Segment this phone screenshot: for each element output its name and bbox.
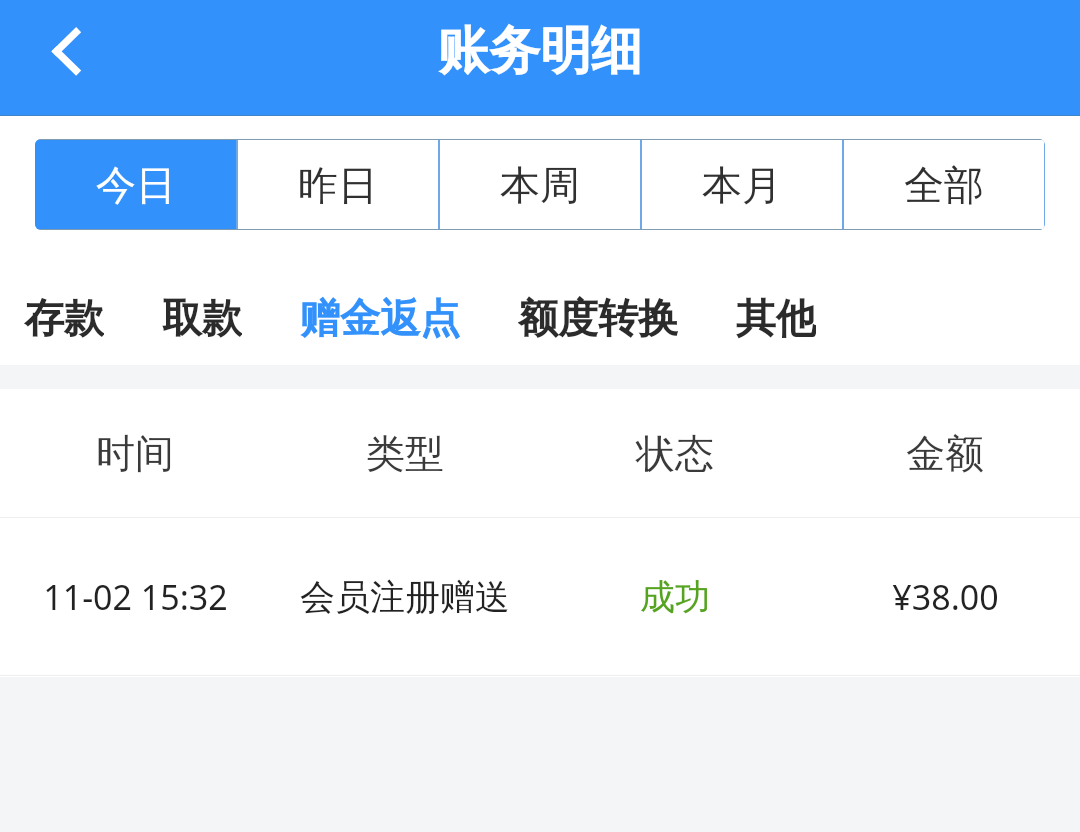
staticText: 今日 [96, 160, 176, 210]
staticText: 赠金返点 [300, 293, 460, 339]
button[interactable]: 全部 [844, 140, 1044, 229]
button[interactable]: 其他 [736, 293, 816, 339]
staticText: ¥38.00 [892, 574, 999, 620]
staticText: 本周 [500, 160, 580, 210]
staticText: 昨日 [298, 160, 378, 210]
staticText: 成功 [640, 575, 710, 619]
button[interactable]: 赠金返点 [300, 293, 460, 339]
button[interactable]: 今日 [36, 140, 236, 229]
staticText: 会员注册赠送 [300, 575, 510, 619]
button[interactable]: 取款 [162, 293, 242, 339]
staticText: 本月 [702, 160, 782, 210]
button[interactable]: 本周 [440, 140, 640, 229]
button[interactable]: 11-02 15:32 [0, 518, 1080, 675]
staticText: 金额 [906, 429, 984, 478]
button[interactable]: 额度转换 [518, 293, 678, 339]
button[interactable]: 存款 [24, 293, 104, 339]
staticText: 11-02 15:32 [43, 574, 228, 620]
staticText: 取款 [162, 293, 242, 339]
staticText: 存款 [24, 293, 104, 339]
button[interactable]: 昨日 [238, 140, 438, 229]
button[interactable]: 本月 [642, 140, 842, 229]
staticText: 全部 [904, 160, 984, 210]
staticText: 时间 [96, 429, 174, 478]
button[interactable]: Back [30, 18, 96, 84]
staticText: 其他 [736, 293, 816, 339]
staticText: 类型 [366, 429, 444, 478]
staticText: 额度转换 [518, 293, 678, 339]
staticText: 账务明细 [438, 19, 642, 83]
staticText: 状态 [636, 429, 714, 478]
